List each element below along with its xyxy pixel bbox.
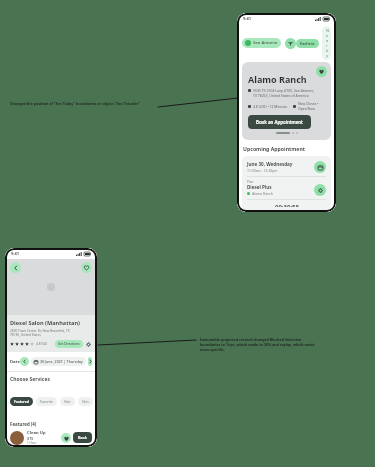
staticText: Alamo Ranch (248, 73, 307, 85)
staticText: 9:41 (11, 251, 19, 256)
staticText: Favorite (40, 399, 53, 404)
button[interactable]: Previous day (20, 357, 29, 366)
staticText: Immutable projected created changed Bloc… (200, 337, 320, 352)
button[interactable]: Skin (78, 397, 93, 406)
staticText: Date (10, 359, 20, 365)
staticText: Featured (14, 399, 29, 404)
staticText: Earliest (300, 41, 315, 46)
staticText: June 30, Wednesday (247, 161, 293, 167)
staticText: 11:30am - 12:30pm (247, 168, 278, 173)
staticText: San Antonio (253, 40, 278, 46)
staticText: 1 Hour (27, 441, 37, 445)
staticText: Book (78, 435, 87, 440)
staticText: 5535 TX-1604 Loop #700, San Antonio, TX … (253, 88, 315, 98)
button[interactable]: Favorite (61, 433, 71, 443)
button[interactable]: Back (10, 262, 21, 273)
staticText: 9:41 (243, 16, 251, 21)
staticText: Clean Up (27, 430, 46, 436)
button[interactable]: Filter (285, 38, 296, 49)
staticText: Alamo Ranch (252, 191, 273, 196)
staticText: Now Closes • Open Now (298, 101, 325, 111)
staticText: 2830 Town Center Dr, New Braunfels, TX 7… (10, 329, 70, 337)
button[interactable]: Nearby (322, 26, 331, 60)
staticText: Book an Appointment (256, 119, 303, 125)
staticText: 4.8 (34) (36, 342, 47, 346)
staticText: 30 June, 2021 | Thursday (40, 359, 83, 364)
button[interactable]: Settings (314, 184, 326, 196)
staticText: Get Directions (58, 342, 80, 346)
staticText: 4.8 (235) • 12 Minutes (253, 104, 288, 109)
button[interactable]: More options (85, 341, 92, 348)
button[interactable]: 30 June, 2021 | Thursday (31, 357, 86, 366)
staticText: Changed the position of "See Today" boun… (10, 101, 141, 106)
button[interactable]: Clean Up (10, 430, 92, 445)
button[interactable]: Get Directions (55, 340, 83, 348)
button[interactable]: Favorite (81, 262, 92, 273)
staticText: Hair (64, 399, 71, 404)
button[interactable]: Earliest (296, 39, 319, 48)
staticText: 00:30:58 (275, 203, 299, 207)
staticText: Nearby (326, 28, 327, 58)
button[interactable]: Hair (60, 397, 75, 406)
staticText: Diesel Plus (247, 184, 272, 190)
staticText: Skin (82, 399, 89, 404)
staticText: Featured (4) (10, 421, 37, 427)
button[interactable]: Next day (88, 357, 92, 366)
staticText: $15 (27, 436, 34, 441)
button[interactable]: Favorite (36, 397, 57, 406)
staticText: Plan (247, 180, 254, 184)
button[interactable]: Favorite (316, 66, 327, 77)
button[interactable]: Calendar (314, 161, 326, 173)
staticText: Upcoming Appointment (243, 145, 306, 152)
button[interactable]: Book (73, 432, 92, 443)
staticText: Choose Services (10, 376, 50, 383)
button[interactable]: San Antonio (242, 38, 281, 48)
button[interactable]: Featured (10, 397, 33, 406)
staticText: Diesel Salon (Manhattan) (10, 319, 80, 327)
button[interactable]: Book an Appointment (248, 115, 311, 129)
